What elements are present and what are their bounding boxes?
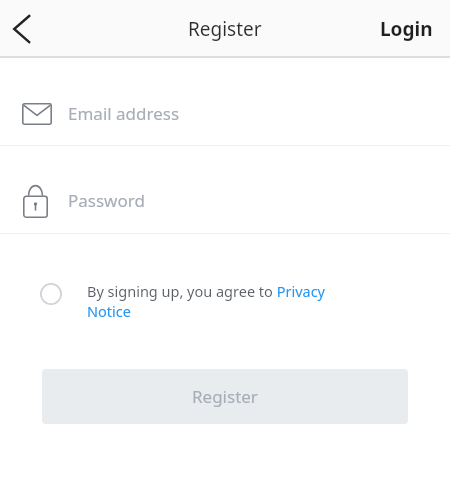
staticText: Register [192,385,258,408]
button[interactable]: Register [42,369,408,424]
staticText: By signing up, you agree to Privacy Noti… [87,281,372,322]
staticText: Login [380,16,433,42]
staticText: Password [68,189,145,212]
staticText: Email address [68,102,180,125]
button[interactable]: By signing up, you agree to Privacy Noti… [0,281,450,322]
button[interactable]: Login [363,2,450,56]
button[interactable]: Back [0,1,56,57]
staticText: Register [188,16,262,42]
button[interactable]: Password [0,180,450,221]
button[interactable]: Email address [0,93,450,134]
